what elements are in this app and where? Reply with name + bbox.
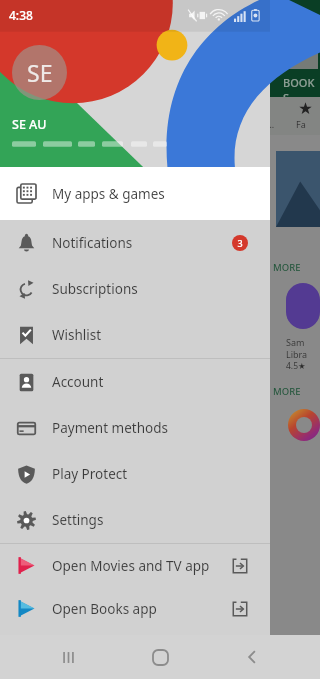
staticText: Open Movies and TV app (52, 557, 210, 575)
staticText: Play Protect (52, 465, 128, 483)
staticText: Notifications (52, 234, 133, 252)
staticText: Fa (296, 118, 306, 130)
staticText: MORE (273, 261, 301, 274)
button[interactable]: Voice search (274, 36, 318, 69)
staticText: Libra (286, 348, 308, 360)
button[interactable]: Payment methods (0, 405, 270, 451)
button[interactable]: My apps & games (0, 167, 270, 220)
staticText: SE AU (12, 116, 47, 133)
staticText: Payment methods (52, 419, 168, 437)
staticText: o.. (264, 118, 275, 130)
staticText: Settings (52, 511, 104, 529)
button[interactable]: Play Protect (0, 451, 270, 497)
button[interactable]: Account avatar (12, 45, 67, 100)
button[interactable]: Subscriptions (0, 266, 270, 312)
button[interactable]: Settings (0, 497, 270, 543)
staticText: 3 (237, 237, 243, 249)
button[interactable]: Recent apps (44, 635, 92, 679)
staticText: Open Books app (52, 600, 157, 618)
staticText: MORE (273, 385, 301, 398)
button[interactable]: Back (228, 635, 276, 679)
staticText: My apps & games (52, 185, 165, 203)
staticText: BOOKS (283, 75, 320, 97)
staticText: SE (27, 57, 53, 88)
staticText: Account (52, 373, 104, 391)
staticText: Subscriptions (52, 280, 138, 298)
staticText: Sam (286, 336, 305, 348)
button[interactable]: Wishlist (0, 312, 270, 358)
button[interactable]: Open Books app (0, 587, 270, 630)
button[interactable]: Home (136, 635, 184, 679)
staticText: Wishlist (52, 326, 102, 344)
button[interactable]: Account (0, 359, 270, 405)
button[interactable]: Notifications (0, 220, 270, 266)
staticText: 4.5★ (286, 360, 306, 372)
staticText: 4:38 (9, 7, 33, 23)
button[interactable]: Open Movies and TV app (0, 544, 270, 587)
